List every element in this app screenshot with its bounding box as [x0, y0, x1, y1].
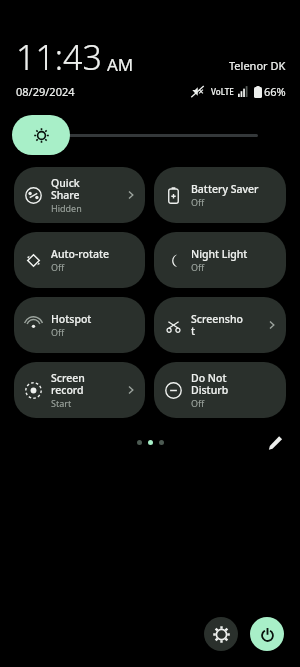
staticText: Night Light [191, 247, 248, 261]
staticText: 66% [264, 84, 286, 99]
button[interactable]: Screen record [14, 362, 145, 418]
button[interactable]: Edit [262, 429, 288, 455]
staticText: Quick Share [51, 176, 80, 202]
button[interactable]: Battery Saver [154, 167, 286, 223]
staticText: Off [51, 261, 65, 273]
staticText: Hotspot [51, 312, 92, 326]
staticText: Off [51, 326, 65, 338]
button[interactable]: Screensho t [154, 297, 286, 353]
staticText: 08/29/2024 [16, 84, 75, 99]
button[interactable]: Do Not Disturb [154, 362, 286, 418]
button[interactable]: Hotspot [14, 297, 145, 353]
staticText: 11:43 [16, 34, 102, 80]
staticText: AM [107, 53, 134, 76]
button[interactable]: Settings [204, 617, 238, 651]
staticText: Hidden [51, 202, 82, 214]
staticText: Auto-rotate [51, 247, 109, 261]
staticText: Battery Saver [191, 182, 259, 196]
button[interactable]: Brightness [12, 112, 288, 158]
staticText: Screen record [51, 371, 85, 397]
button[interactable]: Night Light [154, 232, 286, 288]
button[interactable]: Power [250, 617, 284, 651]
staticText: Off [191, 196, 205, 208]
staticText: VoLTE [211, 86, 234, 97]
staticText: Screensho t [191, 312, 243, 338]
staticText: Off [191, 261, 205, 273]
button[interactable]: Quick Share [14, 167, 145, 223]
staticText: Start [51, 397, 72, 409]
staticText: Telenor DK [229, 58, 286, 73]
staticText: Do Not Disturb [191, 371, 229, 397]
staticText: Off [191, 397, 205, 409]
button[interactable]: Auto-rotate [14, 232, 145, 288]
